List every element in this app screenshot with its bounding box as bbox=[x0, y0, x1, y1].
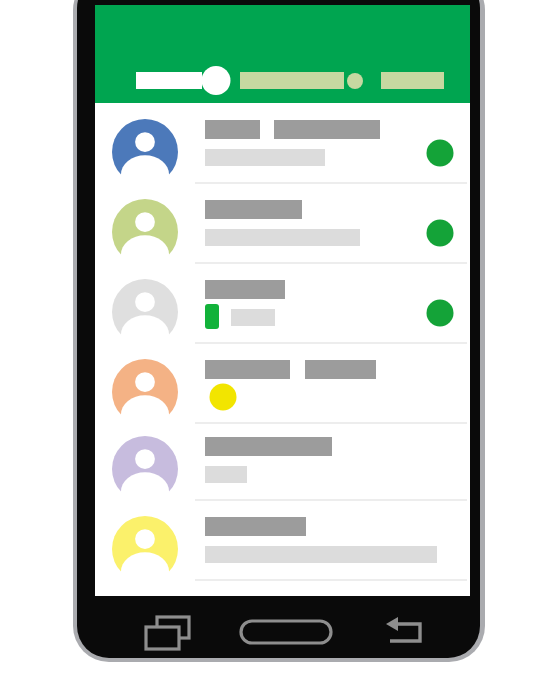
button[interactable]: Conversation 6 bbox=[95, 501, 470, 579]
button[interactable]: Conversation 5 bbox=[95, 421, 470, 499]
button[interactable]: Conversation 3 bbox=[95, 264, 470, 342]
button[interactable]: Conversation 2 bbox=[95, 184, 470, 262]
button[interactable]: Back bbox=[382, 605, 437, 660]
button[interactable]: Conversation 1 bbox=[95, 104, 470, 182]
button[interactable]: Recent apps bbox=[130, 605, 200, 660]
button[interactable]: Home bbox=[240, 610, 332, 655]
button[interactable]: Conversation 4 bbox=[95, 344, 470, 422]
